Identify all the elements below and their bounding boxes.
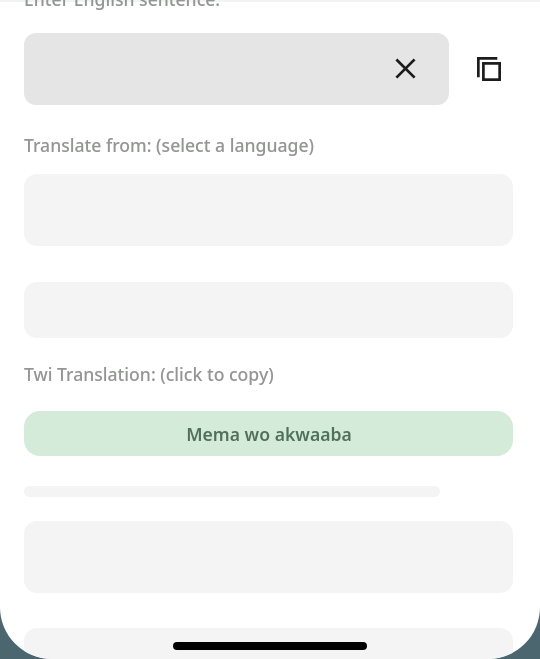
staticText: Twi Translation: (click to copy): [24, 362, 274, 386]
button[interactable]: Mema wo akwaaba: [24, 411, 513, 456]
button[interactable]: Copy: [469, 49, 509, 89]
button[interactable]: English sentence input: [24, 33, 449, 105]
staticText: Mema wo akwaaba: [186, 422, 352, 446]
button[interactable]: Clear text: [389, 52, 422, 85]
staticText: Enter English sentence:: [24, 0, 221, 11]
staticText: Translate from: (select a language): [24, 133, 315, 157]
